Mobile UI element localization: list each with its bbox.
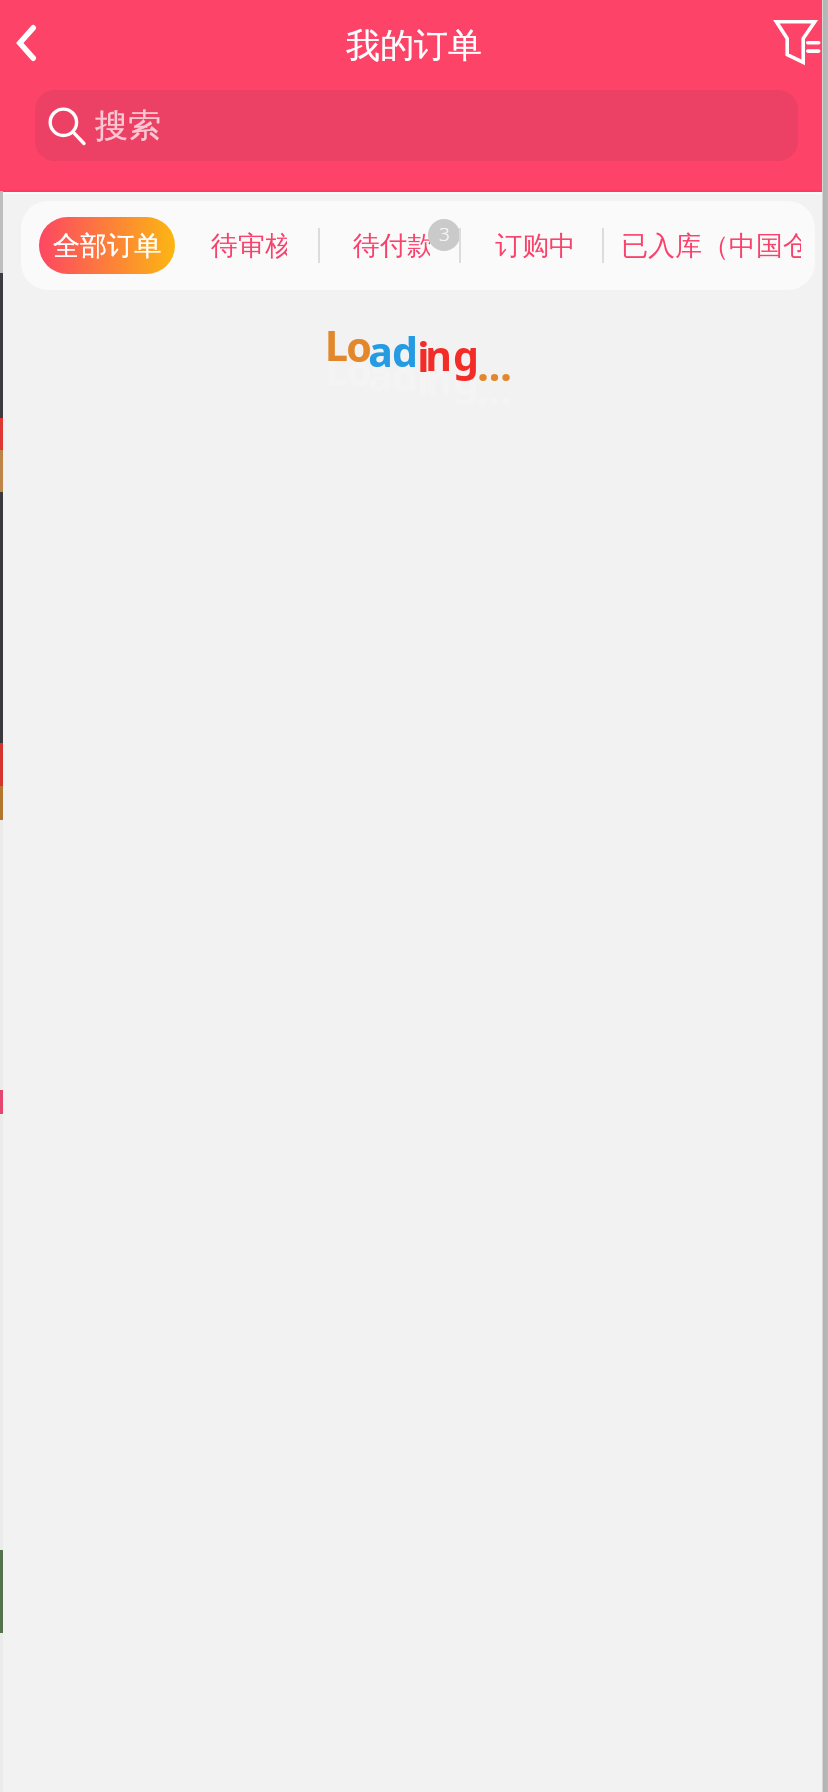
staticText: n	[425, 351, 452, 407]
staticText: a	[368, 347, 393, 403]
button[interactable]: Back	[0, 0, 56, 86]
staticText: 已入库（中国仓	[621, 229, 801, 263]
staticText: d	[392, 323, 418, 379]
staticText: 订购中	[495, 229, 572, 263]
button[interactable]: 全部订单	[39, 217, 175, 274]
staticText: 全部订单	[53, 229, 161, 263]
staticText: i	[417, 352, 430, 408]
staticText: a	[368, 323, 393, 379]
staticText: o	[346, 318, 372, 374]
staticText: 我的订单	[346, 24, 482, 67]
staticText: d	[392, 347, 418, 403]
button[interactable]: 已入库（中国仓	[621, 201, 801, 290]
staticText: L	[325, 341, 348, 397]
button[interactable]: Filter	[764, 0, 824, 86]
staticText: 待付款	[353, 229, 430, 263]
staticText: 待审核	[211, 229, 287, 263]
staticText: ...	[477, 337, 512, 393]
button[interactable]: 搜索	[35, 90, 798, 161]
staticText: g	[453, 327, 479, 383]
staticText: n	[425, 327, 452, 383]
staticText: i	[417, 328, 430, 384]
button[interactable]: 订购中	[495, 201, 572, 290]
staticText: 搜索	[95, 105, 161, 147]
staticText: o	[346, 342, 372, 398]
staticText: g	[453, 351, 479, 407]
button[interactable]: 待审核	[211, 201, 287, 290]
staticText: L	[325, 317, 348, 373]
staticText: ...	[477, 361, 512, 417]
button[interactable]: 待付款	[353, 201, 430, 290]
staticText: 3	[439, 221, 450, 247]
